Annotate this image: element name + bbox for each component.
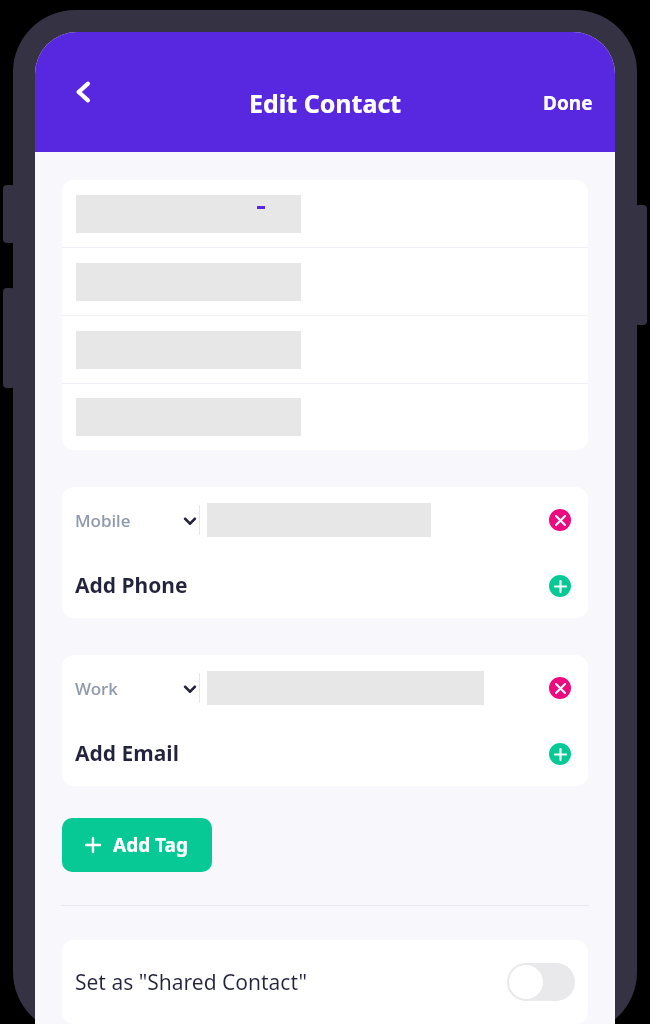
button[interactable] — [62, 316, 588, 383]
button[interactable] — [62, 384, 588, 450]
button[interactable]: Done — [521, 80, 615, 126]
button[interactable]: Remove Work — [545, 673, 575, 703]
staticText: Set as "Shared Contact" — [75, 968, 308, 997]
button[interactable]: Remove Mobile — [545, 505, 575, 535]
button[interactable]: Add Email — [62, 721, 588, 786]
staticText: Add Tag — [113, 832, 188, 858]
button[interactable]: Work — [75, 677, 199, 700]
staticText: Add Phone — [75, 571, 188, 600]
button[interactable]: Back — [61, 69, 107, 115]
button[interactable]: Set as "Shared Contact" — [62, 940, 588, 1024]
button[interactable]: Mobile — [75, 509, 199, 532]
button[interactable]: Add Tag — [62, 818, 212, 872]
staticText: Work — [75, 677, 118, 700]
staticText: Add Email — [75, 739, 179, 768]
staticText: Edit Contact — [249, 86, 402, 120]
button[interactable] — [62, 180, 588, 247]
button[interactable]: Shared contact toggle — [507, 963, 575, 1001]
button[interactable] — [62, 248, 588, 315]
staticText: Done — [543, 90, 593, 116]
staticText: Mobile — [75, 509, 131, 532]
button[interactable]: Add Phone — [62, 553, 588, 618]
